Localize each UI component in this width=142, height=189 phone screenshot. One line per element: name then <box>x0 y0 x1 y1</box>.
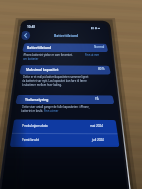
staticText: Produksjonsdato <box>22 124 48 128</box>
staticText: Ytelsesstyring <box>25 97 49 101</box>
staticText: Finn ut mer <box>44 109 59 113</box>
staticText: Dette viser antall ganger de fulle kapas… <box>22 105 90 109</box>
staticText: PÅ <box>95 97 99 101</box>
staticText: Batteritilstand <box>27 45 52 49</box>
staticText: om batterier <box>23 57 39 61</box>
button[interactable] <box>21 105 107 114</box>
staticText: Dette er et mål på batterikapasiteten sa… <box>23 75 89 79</box>
staticText: 10:48 <box>27 25 35 29</box>
staticText: mai 2024 <box>90 124 103 128</box>
button[interactable] <box>20 120 109 134</box>
staticText: Finn ut mer <box>85 53 100 57</box>
button[interactable] <box>22 65 110 75</box>
staticText: brukstimer mellom hver lading. <box>22 83 62 87</box>
staticText: iPhone-batteriet ytelse er som forventet… <box>23 53 73 57</box>
staticText: 80 % <box>98 67 105 71</box>
button[interactable] <box>22 43 110 53</box>
staticText: da batteriet var nytt. Lav kapasitet kan… <box>22 79 87 83</box>
staticText: batteriet er brukt. <box>21 109 44 113</box>
button[interactable] <box>19 134 108 148</box>
staticText: Først brukt <box>22 138 39 142</box>
button[interactable]: Tilbake <box>20 30 31 41</box>
staticText: juli 2024 <box>92 138 104 142</box>
staticText: ▮▮ ● ▬ <box>91 26 101 30</box>
staticText: Normal <box>94 45 105 49</box>
button[interactable] <box>21 95 109 105</box>
staticText: Maksimal kapasitet <box>26 67 59 71</box>
button[interactable] <box>22 53 108 62</box>
staticText: Batteritilstand <box>54 33 79 37</box>
